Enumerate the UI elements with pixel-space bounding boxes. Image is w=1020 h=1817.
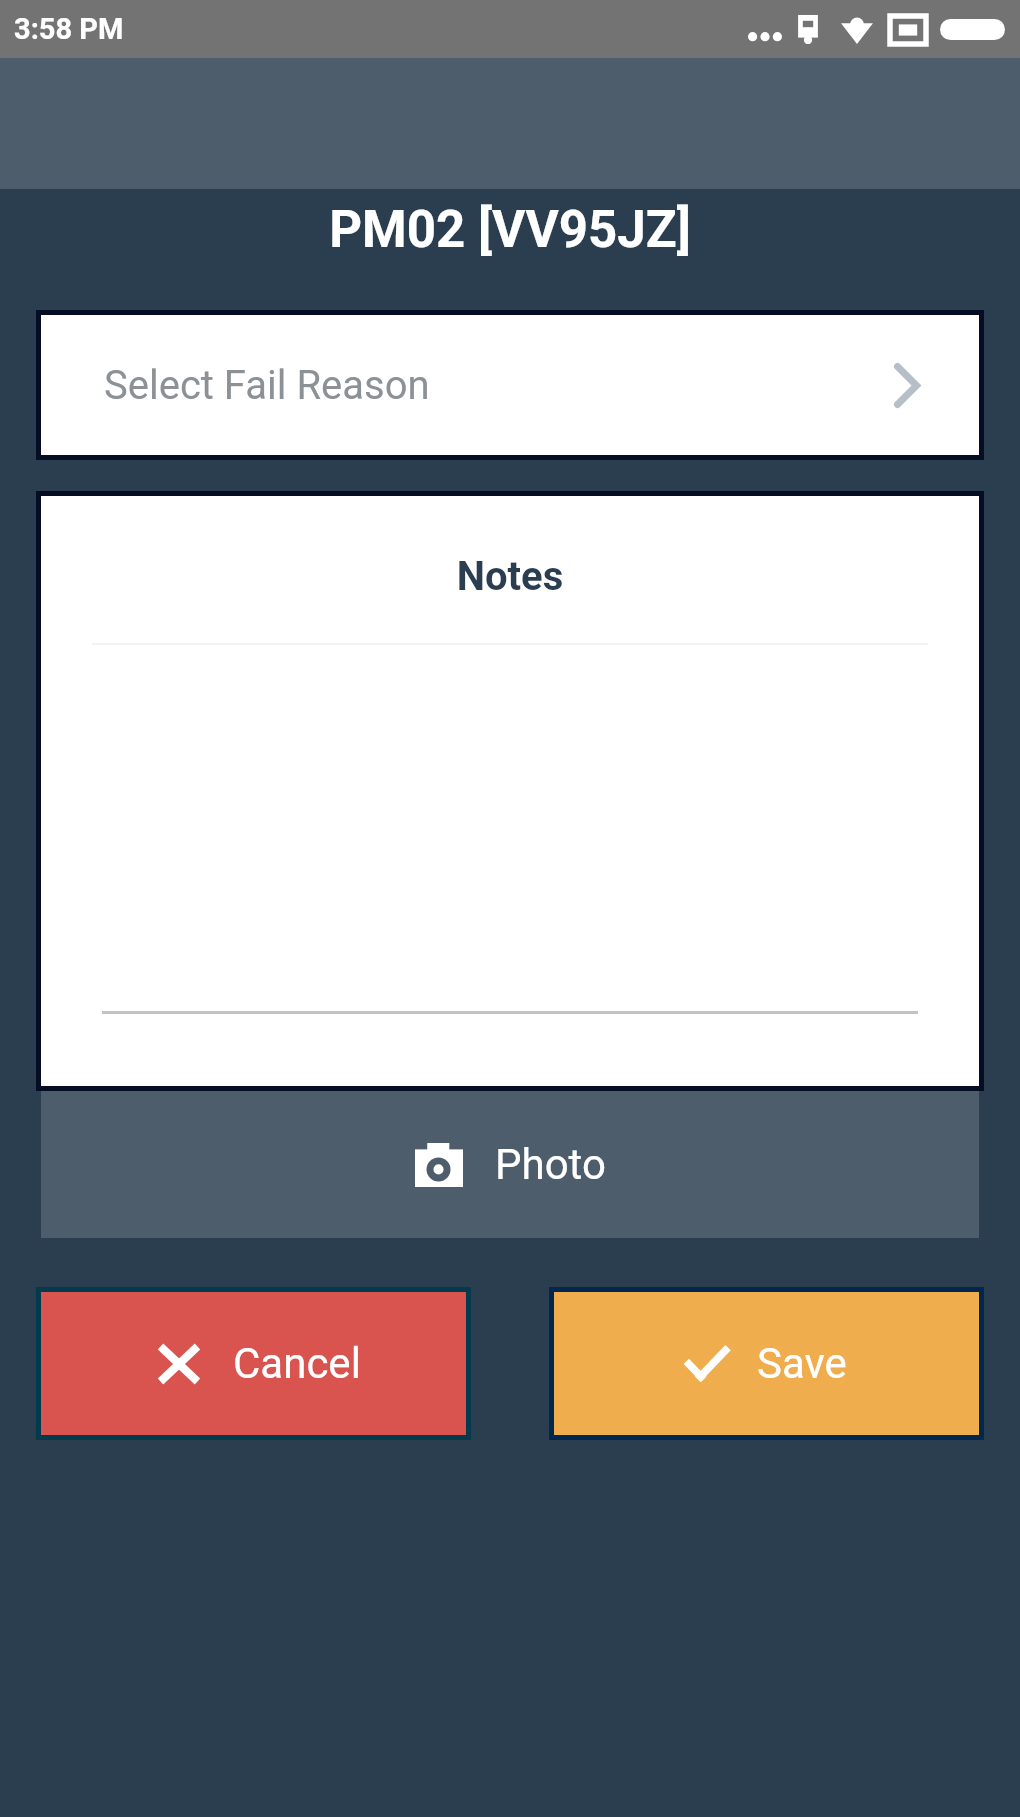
staticText: Save [757,1339,847,1388]
button[interactable]: Save [554,1292,979,1435]
other: Open fail reason list [894,363,920,408]
staticText: PM02 [VV95JZ] [0,200,1020,260]
staticText: Select Fail Reason [104,362,430,409]
staticText: 3:58 PM [14,12,124,46]
button[interactable]: Select Fail Reason [41,315,979,455]
other: Take photo [415,1143,463,1187]
other: Save [686,1347,728,1380]
staticText: Cancel [233,1339,361,1388]
button[interactable]: Take photo [41,1091,979,1238]
staticText: Photo [495,1140,606,1189]
staticText: Notes [41,553,979,600]
button[interactable]: Cancel [41,1292,466,1435]
other: Cancel [160,1346,198,1382]
